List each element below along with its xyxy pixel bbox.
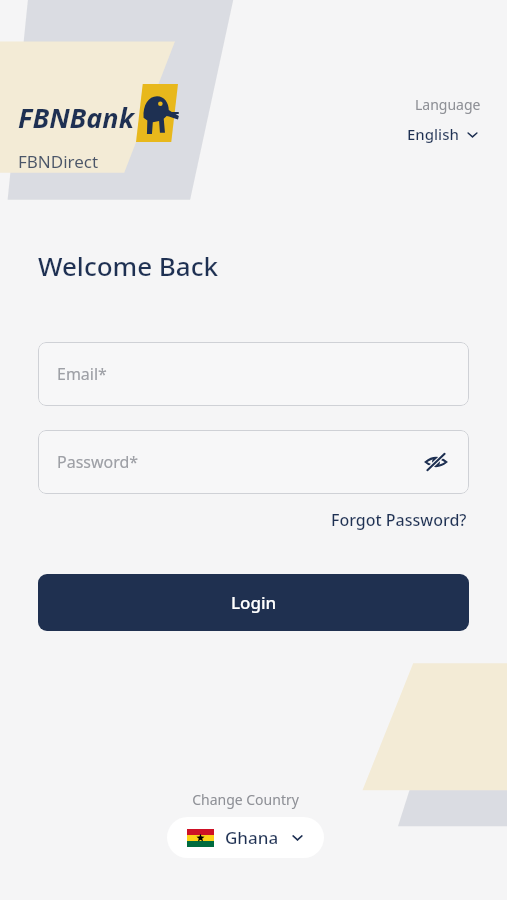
staticText: Login (231, 591, 277, 614)
staticText: English (407, 124, 459, 144)
staticText: FBNDirect (18, 150, 99, 173)
button[interactable]: Show password (417, 443, 455, 481)
staticText: Forgot Password? (331, 509, 467, 531)
staticText: Email* (57, 363, 107, 385)
button[interactable]: Login (38, 574, 469, 631)
staticText: Change Country (192, 790, 299, 809)
button[interactable]: Ghana (167, 817, 324, 858)
staticText: FBNBank (18, 99, 134, 136)
staticText: Welcome Back (38, 248, 219, 283)
button[interactable]: Password* (38, 430, 469, 494)
button[interactable]: Forgot Password? (329, 506, 469, 534)
staticText: Password* (57, 451, 139, 473)
staticText: Ghana (225, 826, 279, 849)
button[interactable]: Email* (38, 342, 469, 406)
staticText: Language (415, 95, 481, 114)
button[interactable]: English (405, 122, 481, 146)
